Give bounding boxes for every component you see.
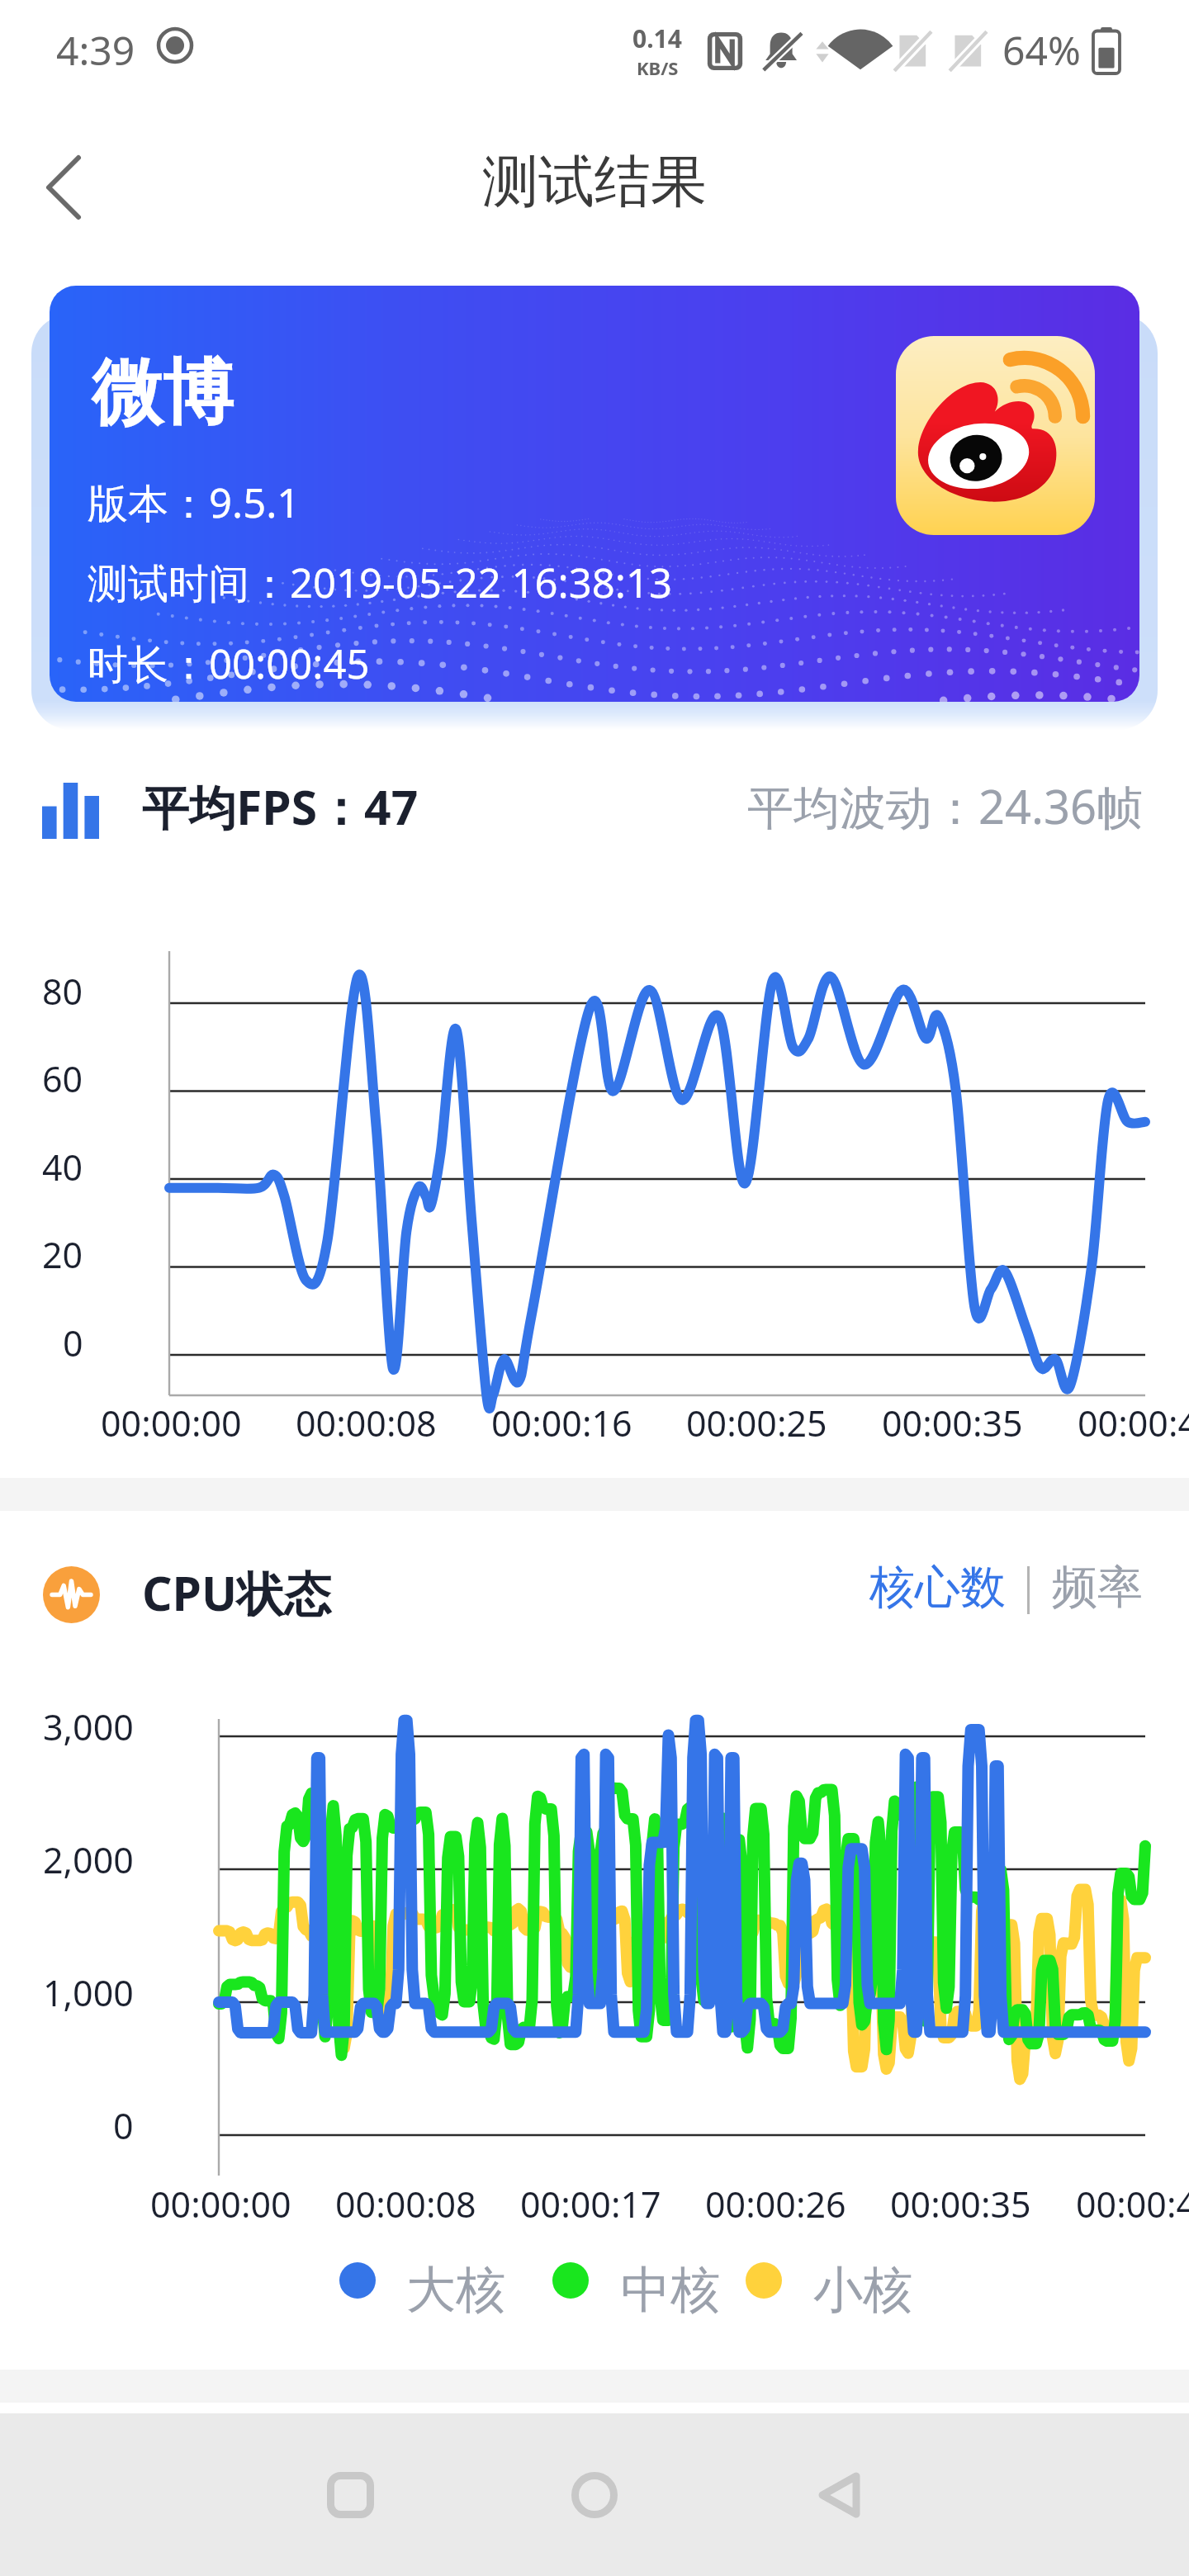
staticText: 64% [1002, 23, 1081, 77]
staticText: 00:00:00 [101, 1399, 242, 1447]
staticText: 微博 [92, 348, 234, 438]
staticText: 中核 [621, 2259, 720, 2322]
staticText: 60 [42, 1054, 83, 1103]
staticText: 00:00:16 [491, 1399, 632, 1447]
staticText: 80 [42, 967, 83, 1016]
staticText: 2,000 [43, 1835, 134, 1884]
staticText: 00:00:08 [335, 2180, 476, 2228]
staticText: 大核 [406, 2259, 505, 2322]
button[interactable]: Back [14, 138, 113, 237]
staticText: 4:39 [56, 23, 135, 77]
staticText: 00:00:26 [705, 2180, 846, 2228]
button[interactable]: Recents [301, 2446, 400, 2545]
staticText: 00:00:4 [1078, 1399, 1189, 1447]
staticText: 00:00:17 [520, 2180, 661, 2228]
staticText: 00:00:25 [686, 1399, 827, 1447]
staticText: 测试时间：2019-05-22 16:38:13 [88, 555, 672, 610]
button[interactable]: 微博 [50, 286, 1139, 702]
staticText: 3,000 [43, 1702, 134, 1751]
staticText: CPU状态 [142, 1560, 332, 1625]
staticText: 平均波动：24.36帧 [747, 774, 1144, 837]
staticText: 00:00:08 [296, 1399, 437, 1447]
staticText: 1,000 [43, 1968, 134, 2017]
button[interactable]: 核心数 [869, 1559, 1006, 1616]
staticText: 测试结果 [482, 147, 707, 218]
staticText: 20 [42, 1230, 83, 1279]
button[interactable]: Home [545, 2446, 644, 2545]
staticText: 平均FPS：47 [142, 774, 419, 839]
staticText: 0 [113, 2101, 134, 2150]
button[interactable]: 频率 [1052, 1559, 1143, 1616]
staticText: 版本：9.5.1 [88, 475, 301, 530]
staticText: 0 [63, 1319, 83, 1367]
staticText: 40 [42, 1143, 83, 1191]
staticText: 00:00:00 [150, 2180, 291, 2228]
staticText: 频率 [1052, 1559, 1143, 1616]
button[interactable]: Back [789, 2446, 888, 2545]
staticText: 核心数 [869, 1559, 1006, 1616]
staticText: 00:00:35 [882, 1399, 1023, 1447]
staticText: 小核 [813, 2259, 912, 2322]
staticText: 00:00:4 [1076, 2180, 1189, 2228]
staticText: 0.14 [632, 21, 682, 55]
staticText: 时长：00:00:45 [88, 636, 370, 691]
staticText: 00:00:35 [890, 2180, 1031, 2228]
staticText: KB/S [637, 55, 679, 80]
